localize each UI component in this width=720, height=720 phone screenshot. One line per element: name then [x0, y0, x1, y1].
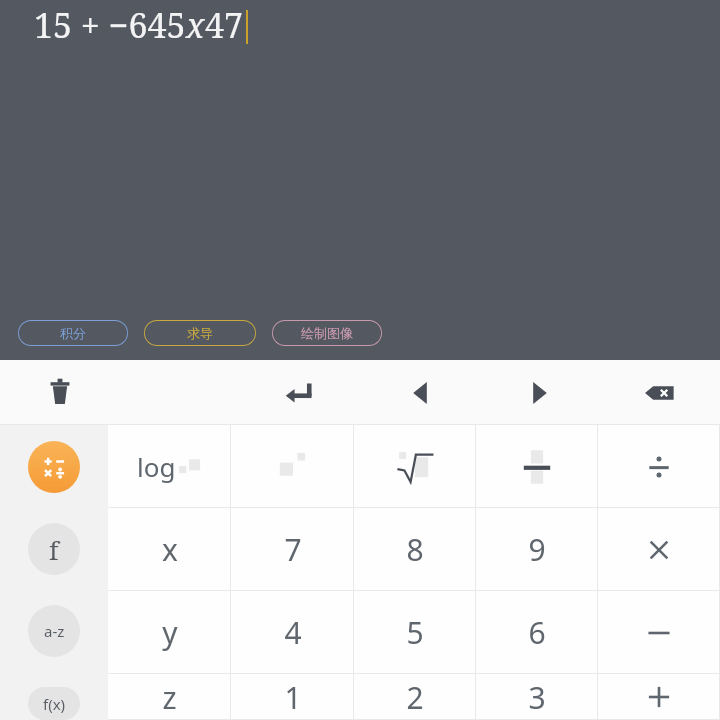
- button[interactable]: y: [108, 591, 231, 674]
- button[interactable]: a-z: [28, 605, 80, 657]
- button[interactable]: 绘制图像: [272, 320, 382, 346]
- button[interactable]: [354, 425, 476, 508]
- button[interactable]: [231, 425, 354, 508]
- button[interactable]: [598, 591, 720, 674]
- staticText: x: [162, 529, 178, 570]
- staticText: 2: [406, 677, 424, 718]
- button[interactable]: x: [108, 508, 231, 591]
- staticText: 6: [528, 612, 546, 653]
- button[interactable]: Delete all: [0, 360, 120, 425]
- button[interactable]: Enter: [240, 360, 360, 425]
- staticText: 9: [528, 529, 546, 570]
- staticText: 47: [205, 2, 244, 48]
- button[interactable]: z: [108, 674, 231, 720]
- button[interactable]: 3: [476, 674, 598, 720]
- button[interactable]: 积分: [18, 320, 128, 346]
- button[interactable]: 4: [231, 591, 354, 674]
- button[interactable]: 1: [231, 674, 354, 720]
- staticText: 1: [284, 677, 302, 718]
- button[interactable]: 5: [354, 591, 476, 674]
- button[interactable]: 6: [476, 591, 598, 674]
- staticText: 4: [284, 612, 302, 653]
- button[interactable]: Backspace: [600, 360, 720, 425]
- button[interactable]: 9: [476, 508, 598, 591]
- button[interactable]: Move right: [480, 360, 600, 425]
- button[interactable]: f(x): [28, 687, 80, 720]
- button[interactable]: [598, 425, 720, 508]
- staticText: 8: [406, 529, 424, 570]
- staticText: f(x): [43, 694, 66, 714]
- button[interactable]: 求导: [144, 320, 256, 346]
- button[interactable]: Operators: [28, 441, 80, 493]
- staticText: log: [137, 449, 176, 484]
- staticText: 7: [284, 529, 302, 570]
- staticText: f: [49, 532, 59, 567]
- staticText: a-z: [44, 621, 65, 641]
- button[interactable]: 7: [231, 508, 354, 591]
- staticText: 15 + −645: [34, 2, 186, 48]
- staticText: 5: [406, 612, 424, 653]
- staticText: 绘制图像: [301, 325, 353, 341]
- button[interactable]: [476, 425, 598, 508]
- button[interactable]: 2: [354, 674, 476, 720]
- staticText: z: [162, 677, 177, 718]
- button[interactable]: Move left: [360, 360, 480, 425]
- staticText: y: [162, 612, 178, 653]
- staticText: 求导: [187, 325, 213, 341]
- button[interactable]: [598, 674, 720, 720]
- staticText: x: [186, 2, 205, 48]
- button[interactable]: Functions: [28, 523, 80, 575]
- button[interactable]: log: [108, 425, 231, 508]
- staticText: 积分: [60, 325, 86, 341]
- button[interactable]: [598, 508, 720, 591]
- button[interactable]: 8: [354, 508, 476, 591]
- staticText: 3: [528, 677, 546, 718]
